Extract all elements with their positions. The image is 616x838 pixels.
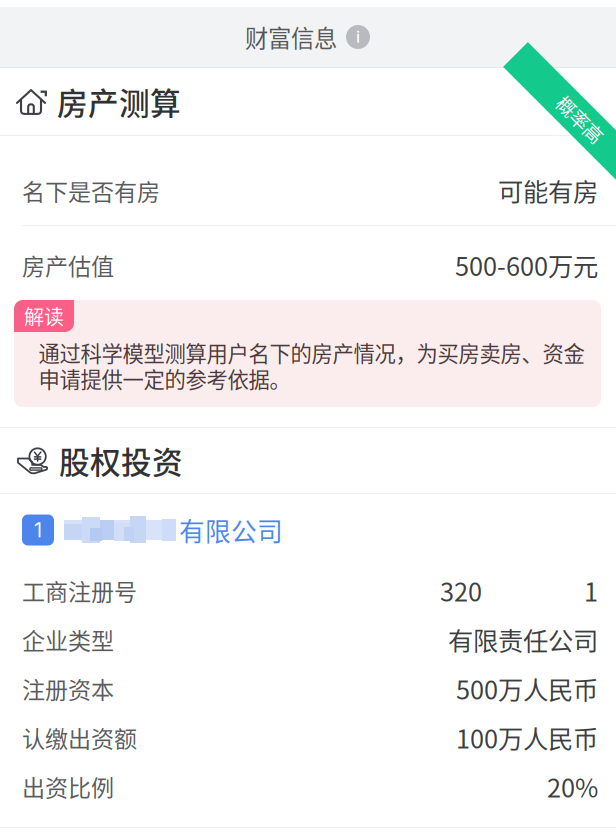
staticText: 100万人民币 — [456, 719, 598, 756]
staticText: 通过科学模型测算用户名下的房产情况，为买房卖房、资金 申请提供一定的参考依据。 — [38, 337, 584, 394]
button[interactable]: 1 — [0, 494, 616, 566]
staticText: 概率高 — [547, 116, 604, 144]
staticText: 股权投资 — [59, 438, 183, 483]
button[interactable]: 说明 — [345, 24, 371, 50]
staticText: 有限责任公司 — [448, 621, 598, 658]
button[interactable]: 企业类型 — [0, 615, 616, 664]
staticText: 房产估值 — [22, 248, 114, 282]
staticText: 房产测算 — [57, 79, 181, 124]
staticText: 出资比例 — [22, 770, 114, 803]
staticText: 有限公司 — [179, 511, 283, 549]
staticText: 名下是否有房 — [22, 174, 160, 207]
staticText: 500-600万元 — [455, 247, 598, 283]
staticText: 1 — [34, 518, 42, 542]
staticText: 企业类型 — [22, 623, 114, 656]
staticText: 财富信息 — [245, 20, 337, 54]
button[interactable]: 出资比例 — [0, 762, 616, 811]
staticText: 500万人民币 — [456, 670, 598, 707]
button[interactable]: 名下是否有房 — [0, 136, 616, 225]
button[interactable]: 注册资本 — [0, 664, 616, 713]
staticText: 工商注册号 — [22, 574, 137, 607]
staticText: i — [356, 27, 360, 47]
button[interactable]: 工商注册号 — [0, 566, 616, 615]
staticText: 可能有房 — [498, 172, 598, 209]
staticText: 注册资本 — [22, 672, 114, 705]
staticText: 解读 — [24, 301, 64, 330]
staticText: 320 1 — [440, 572, 598, 609]
staticText: 认缴出资额 — [22, 721, 137, 754]
button[interactable]: 房产估值 — [0, 226, 616, 300]
button[interactable]: 认缴出资额 — [0, 713, 616, 762]
staticText: 20% — [547, 768, 598, 805]
